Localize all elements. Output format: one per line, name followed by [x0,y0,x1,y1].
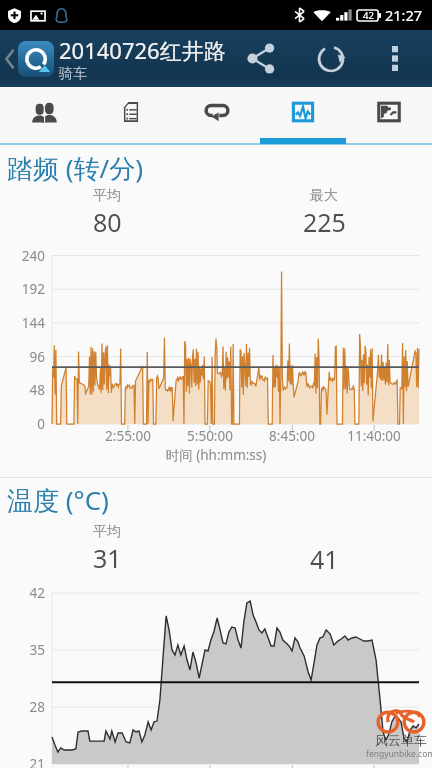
staticText: 最大 [310,187,338,205]
staticText: 20140726红井路 [59,35,226,65]
button[interactable]: Map [346,87,432,138]
button[interactable]: Back [0,30,56,87]
staticText: 144 [0,314,45,332]
staticText: 骑车 [59,65,87,83]
staticText: 42 [0,584,45,602]
staticText: 时间 (hh:mm:ss) [0,446,432,464]
staticText: 96 [0,348,45,366]
staticText: 80 [93,205,122,239]
staticText: 28 [0,698,45,716]
button[interactable]: Details [87,87,174,138]
staticText: 11:40:00 [329,427,419,445]
staticText: 2:55:00 [83,427,173,445]
staticText: 风云单车 [375,732,427,748]
staticText: 0 [0,415,45,433]
staticText: 48 [0,381,45,399]
staticText: 42 [363,9,374,22]
button[interactable]: Refresh [303,30,359,87]
staticText: 240 [0,247,45,265]
button[interactable]: Friends [0,87,87,138]
staticText: 踏频 (转/分) [7,150,144,186]
staticText: 41 [310,542,339,576]
button[interactable]: Share [233,30,289,87]
staticText: 192 [0,280,45,298]
button[interactable]: Charts [260,87,346,138]
staticText: 平均 [93,187,121,205]
staticText: 31 [93,541,122,575]
staticText: 平均 [93,523,121,541]
staticText: 温度 (°C) [7,482,109,518]
button[interactable]: More options [375,30,415,87]
staticText: 35 [0,641,45,659]
staticText: 21:27 [385,5,423,25]
staticText: 225 [303,205,346,239]
staticText: 8:45:00 [247,427,337,445]
staticText: 21 [0,755,45,768]
staticText: 5:50:00 [165,427,255,445]
staticText: fengyunbike.com [366,748,432,760]
button[interactable]: Laps [174,87,260,138]
